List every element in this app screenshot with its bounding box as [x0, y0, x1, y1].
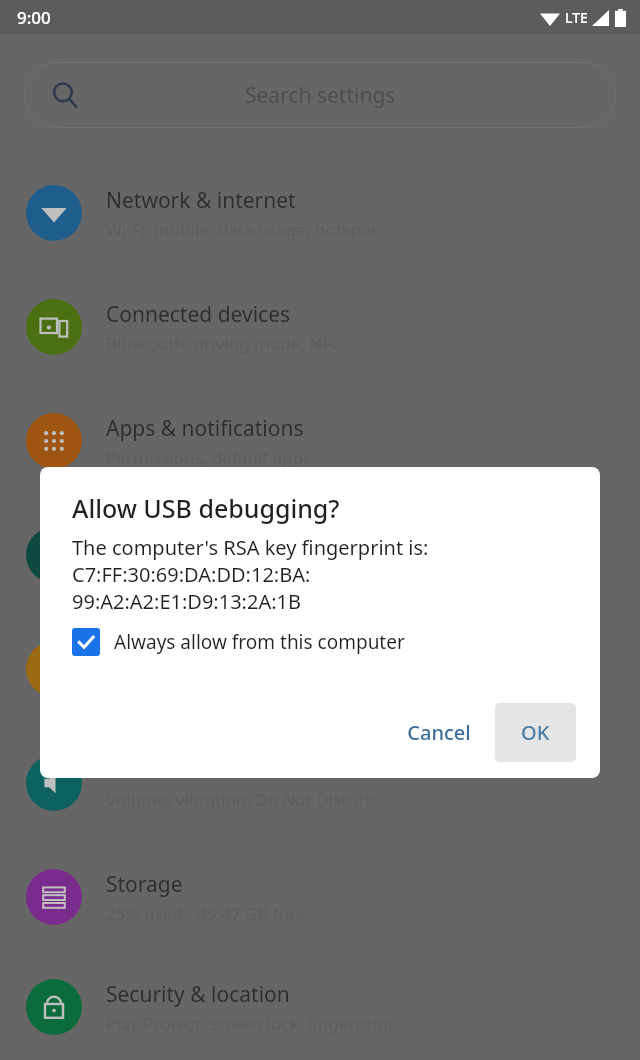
staticText: Storage	[106, 870, 183, 899]
staticText: Cancel	[407, 719, 471, 746]
staticText: C7:FF:30:69:DA:DD:12:BA:	[72, 561, 311, 588]
staticText: LTE	[565, 8, 588, 27]
button[interactable]: Display	[0, 612, 640, 726]
staticText: Always allow from this computer	[114, 629, 405, 655]
staticText: Permissions, default apps	[106, 446, 312, 469]
button[interactable]: Search settings	[24, 62, 616, 128]
staticText: Search settings	[245, 81, 396, 110]
staticText: Display	[106, 642, 178, 671]
button[interactable]: Storage	[0, 840, 640, 954]
staticText: OK	[521, 719, 550, 746]
button[interactable]: Cancel	[391, 707, 487, 758]
staticText: The computer's RSA key fingerprint is:	[72, 534, 429, 561]
button[interactable]: Security & location	[0, 954, 640, 1060]
button[interactable]: Always allow from this computer	[72, 628, 405, 656]
button[interactable]: Sound	[0, 726, 640, 840]
button[interactable]: OK	[495, 703, 576, 762]
staticText: 100% - charging	[106, 560, 235, 583]
staticText: Network & internet	[106, 186, 296, 215]
button[interactable]: Network & internet	[0, 156, 640, 270]
button[interactable]: Apps & notifications	[0, 384, 640, 498]
button[interactable]: Connected devices	[0, 270, 640, 384]
staticText: Battery	[106, 528, 178, 557]
staticText: 9:00	[17, 6, 51, 29]
staticText: Sound	[106, 756, 170, 785]
staticText: Apps & notifications	[106, 414, 304, 443]
staticText: Allow USB debugging?	[72, 491, 340, 525]
staticText: Security & location	[106, 980, 290, 1009]
button[interactable]: Battery	[0, 498, 640, 612]
staticText: Connected devices	[106, 300, 291, 329]
staticText: 99:A2:A2:E1:D9:13:2A:1B	[72, 588, 301, 615]
